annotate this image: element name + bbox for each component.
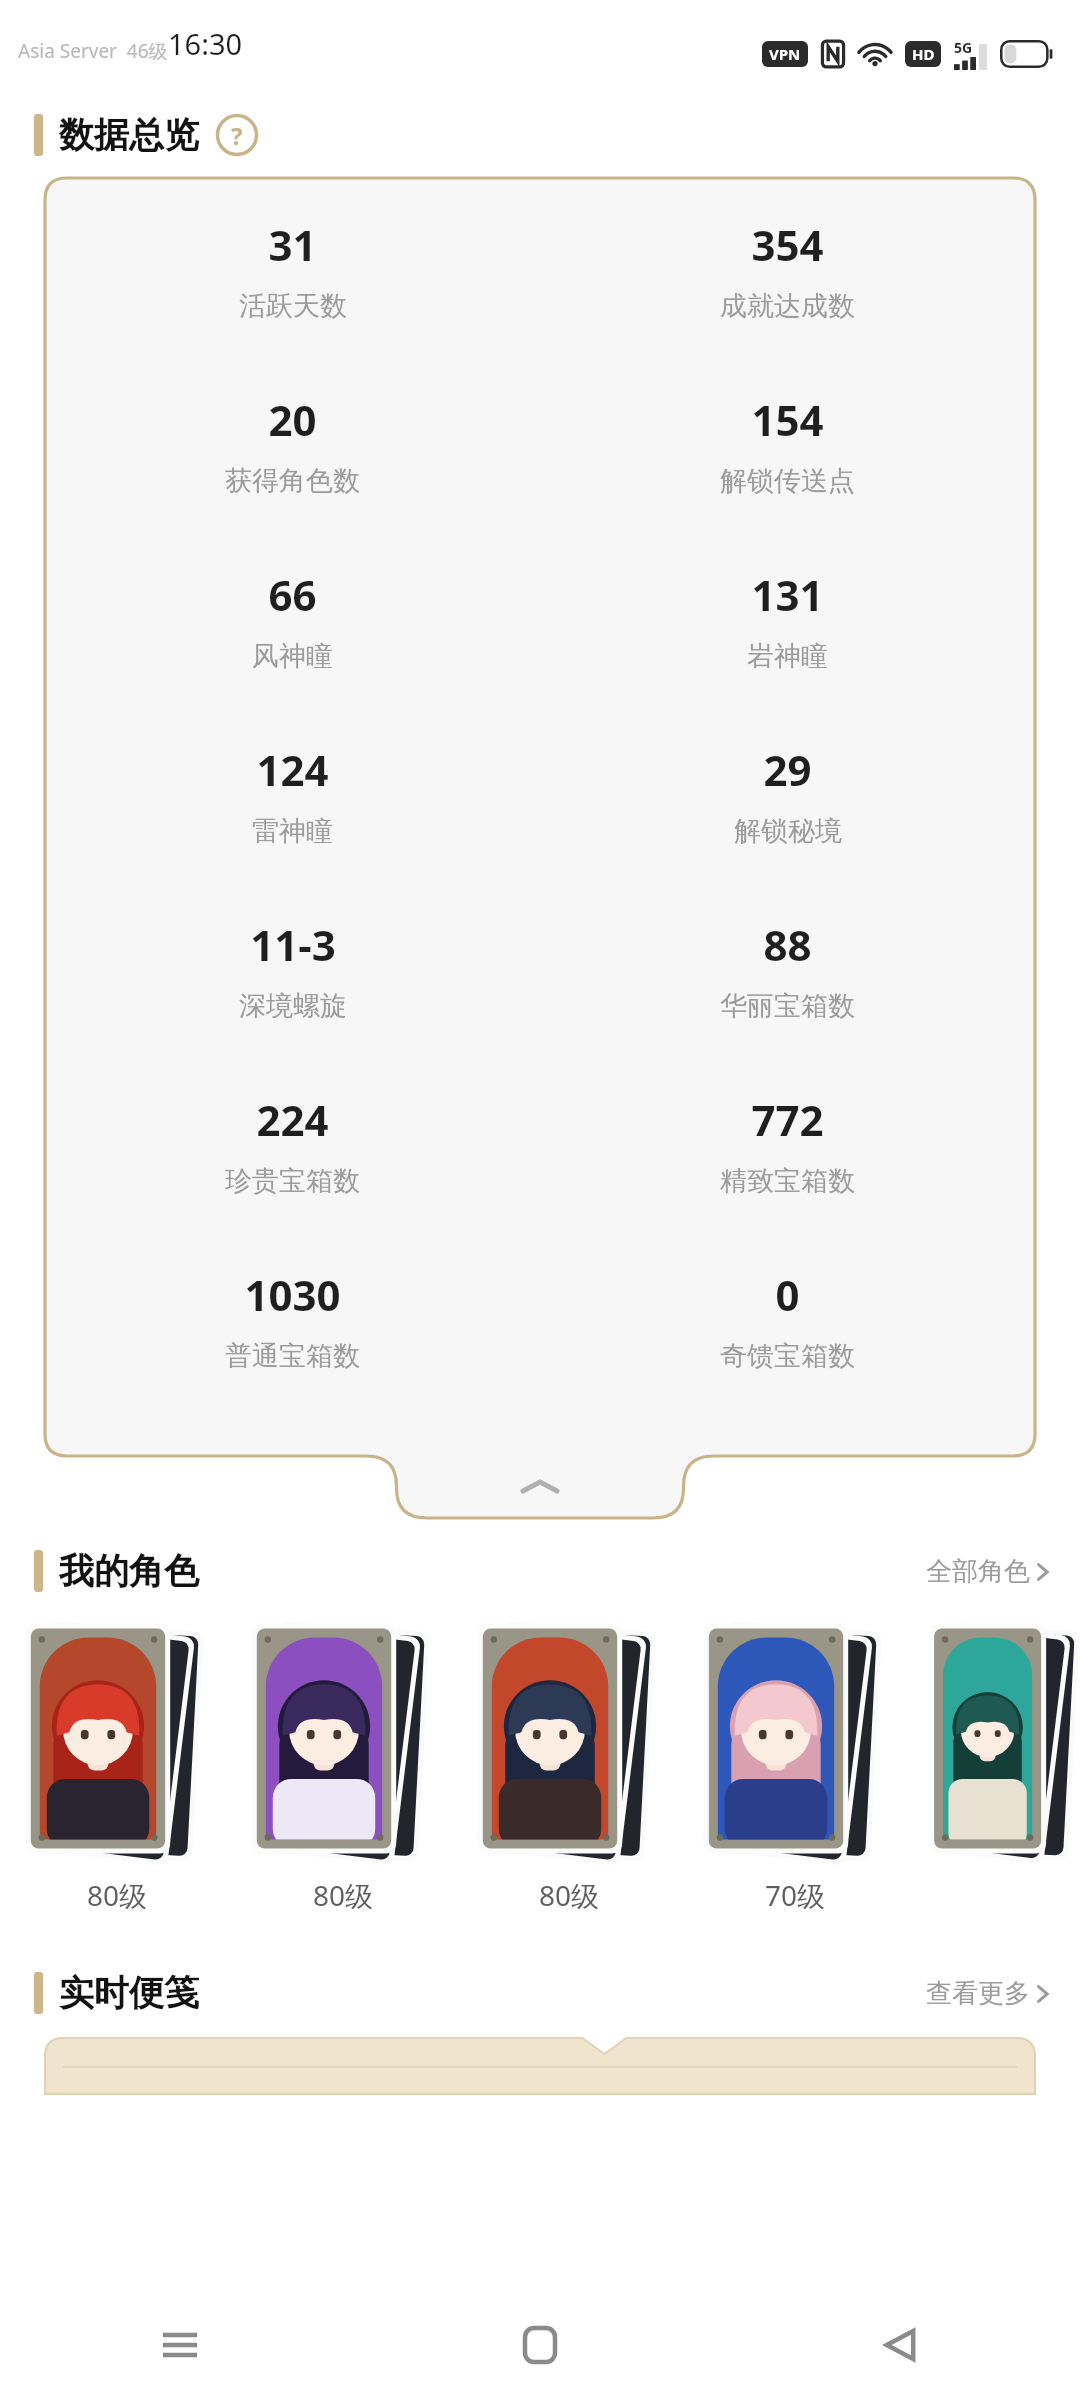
staticText: Asia Server 46级 — [18, 38, 168, 64]
button[interactable]: Help — [215, 113, 259, 157]
staticText: 奇馈宝箱数 — [720, 1339, 855, 1373]
staticText: 16:30 — [168, 24, 243, 63]
staticText: 数据总览 — [59, 113, 199, 157]
staticText: 普通宝箱数 — [225, 1339, 360, 1373]
staticText: HD — [912, 44, 935, 64]
staticText: 80级 — [313, 1876, 374, 1914]
button[interactable]: 80级 — [248, 1616, 438, 1914]
staticText: 成就达成数 — [720, 289, 855, 323]
staticText: 查看更多 — [926, 1977, 1030, 2010]
staticText: 解锁传送点 — [720, 464, 855, 498]
staticText: 活跃天数 — [239, 289, 347, 323]
staticText: ? — [231, 119, 243, 152]
staticText: 20 — [268, 391, 317, 448]
staticText: 风神瞳 — [252, 639, 333, 673]
button[interactable]: 66 — [45, 566, 540, 741]
staticText: 0 — [775, 1266, 800, 1323]
staticText: 全部角色 — [926, 1555, 1030, 1588]
staticText: 11-3 — [250, 916, 336, 973]
button[interactable]: Recents — [0, 2290, 360, 2400]
button[interactable]: 20 — [45, 391, 540, 566]
button[interactable]: 31 — [45, 216, 540, 391]
staticText: 1030 — [244, 1266, 341, 1323]
staticText: 70级 — [765, 1876, 826, 1914]
staticText: 深境螺旋 — [239, 989, 347, 1023]
button[interactable]: 29 — [540, 741, 1035, 916]
staticText: 岩神瞳 — [747, 639, 828, 673]
staticText: VPN — [769, 44, 801, 64]
button[interactable]: 772 — [540, 1091, 1035, 1266]
staticText: 224 — [256, 1091, 329, 1148]
button[interactable]: 1030 — [45, 1266, 540, 1441]
staticText: 88 — [763, 916, 812, 973]
staticText: 66 — [268, 566, 317, 623]
button[interactable]: 224 — [45, 1091, 540, 1266]
staticText: 131 — [751, 566, 824, 623]
button[interactable]: Back — [720, 2290, 1080, 2400]
staticText: 获得角色数 — [225, 464, 360, 498]
button[interactable]: 80级 — [474, 1616, 664, 1914]
staticText: 31 — [268, 216, 317, 273]
staticText: 354 — [751, 216, 824, 273]
button[interactable]: 全部角色 — [926, 1555, 1050, 1588]
staticText: 珍贵宝箱数 — [225, 1164, 360, 1198]
staticText: 解锁秘境 — [734, 814, 842, 848]
staticText: 精致宝箱数 — [720, 1164, 855, 1198]
button[interactable] — [926, 1616, 1080, 1876]
staticText: 雷神瞳 — [252, 814, 333, 848]
button[interactable]: 354 — [540, 216, 1035, 391]
staticText: 29 — [763, 741, 812, 798]
button[interactable]: 70级 — [700, 1616, 890, 1914]
button[interactable]: 88 — [540, 916, 1035, 1091]
staticText: 5G — [954, 38, 973, 57]
button[interactable]: 0 — [540, 1266, 1035, 1441]
button[interactable]: 80级 — [22, 1616, 212, 1914]
staticText: 772 — [751, 1091, 824, 1148]
staticText: 我的角色 — [59, 1549, 199, 1593]
staticText: 154 — [751, 391, 824, 448]
button[interactable]: 154 — [540, 391, 1035, 566]
button[interactable] — [45, 2038, 1035, 2094]
button[interactable]: 131 — [540, 566, 1035, 741]
staticText: 实时便笺 — [59, 1971, 199, 2015]
staticText: 124 — [256, 741, 329, 798]
button[interactable]: 查看更多 — [926, 1977, 1050, 2010]
button[interactable]: 11-3 — [45, 916, 540, 1091]
staticText: 80级 — [539, 1876, 600, 1914]
staticText: 80级 — [87, 1876, 148, 1914]
button[interactable]: 124 — [45, 741, 540, 916]
button[interactable]: Home — [360, 2290, 720, 2400]
staticText: 华丽宝箱数 — [720, 989, 855, 1023]
